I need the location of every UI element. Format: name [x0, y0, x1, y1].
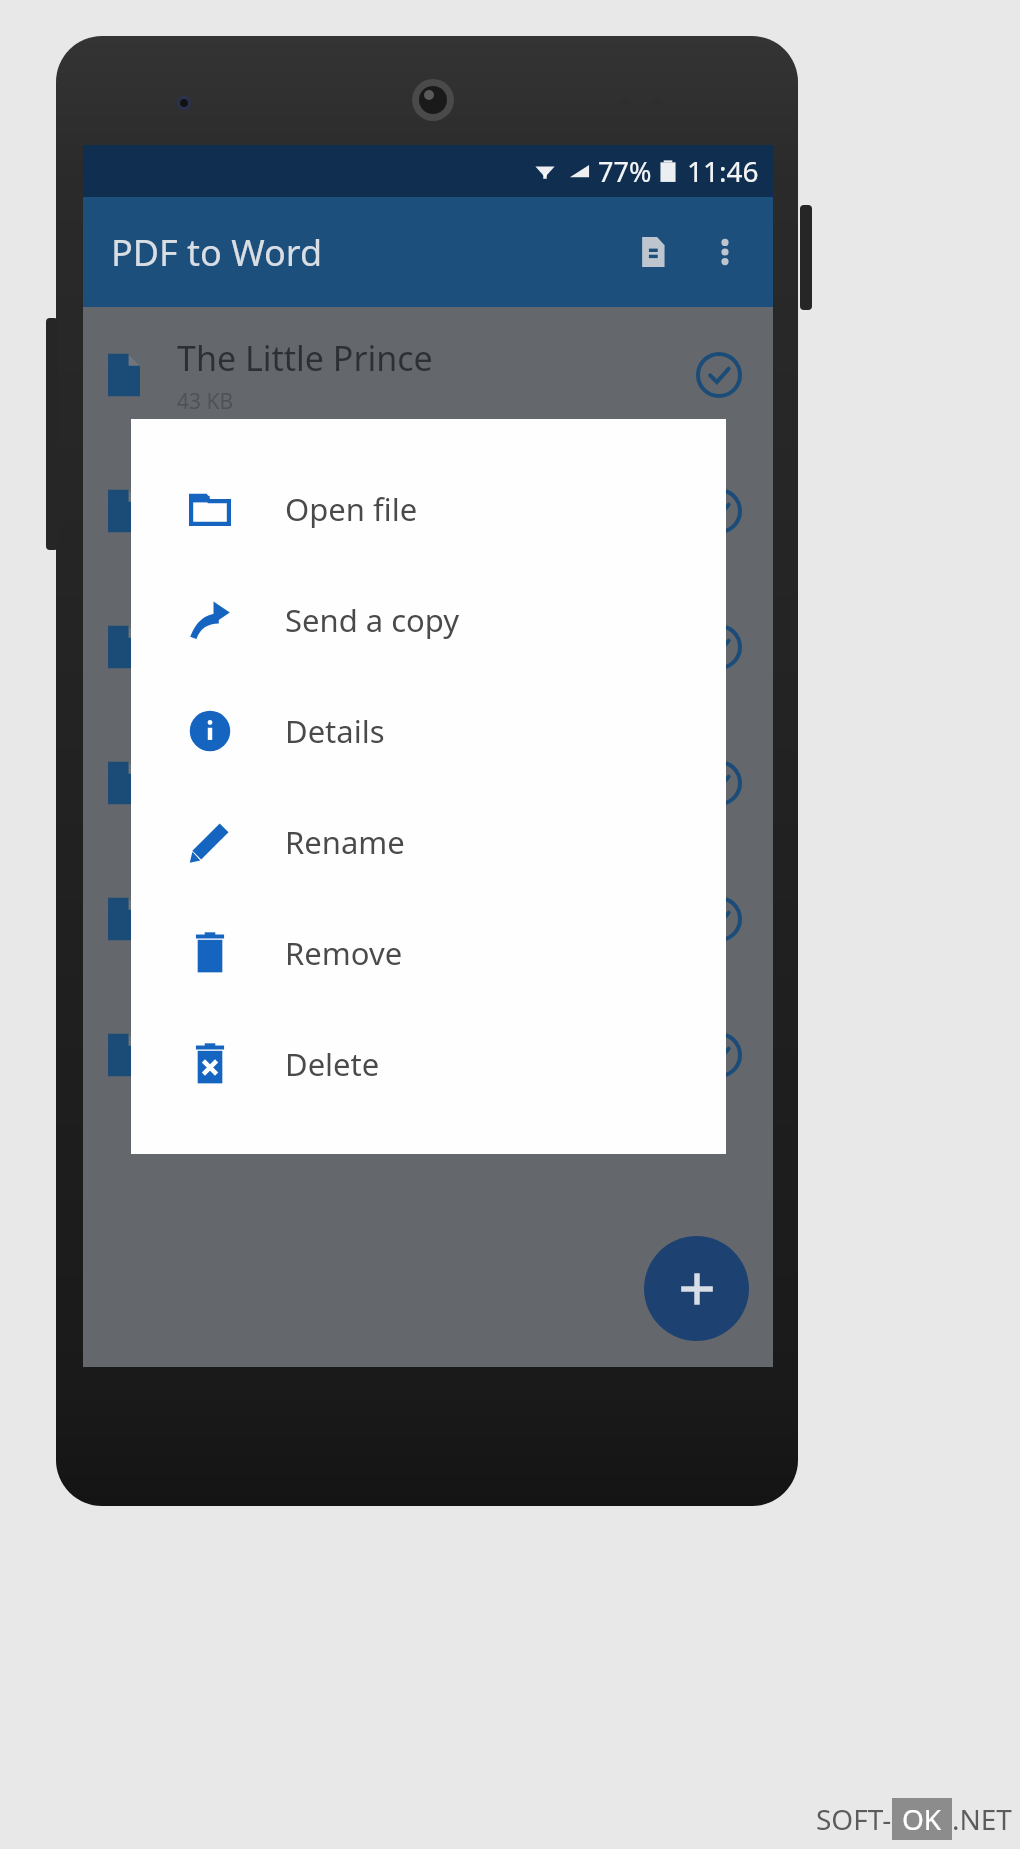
- staticText: 43 KB: [177, 387, 234, 416]
- button[interactable]: Remove: [131, 897, 726, 1008]
- staticText: SOFT-: [816, 1800, 892, 1838]
- button[interactable]: Select file: [83, 715, 773, 851]
- staticText: OK: [902, 1800, 942, 1838]
- staticText: Send a copy: [285, 599, 460, 641]
- staticText: Open file: [285, 488, 418, 530]
- staticText: Details: [285, 710, 385, 752]
- button[interactable]: Select file: [83, 851, 773, 987]
- button[interactable]: Select file: [687, 887, 751, 951]
- button[interactable]: Details: [131, 675, 726, 786]
- staticText: .NET: [952, 1800, 1012, 1838]
- button[interactable]: The Little Prince: [83, 307, 773, 443]
- button[interactable]: Select file: [687, 1023, 751, 1087]
- button[interactable]: Select file: [83, 987, 773, 1123]
- staticText: 11:46: [687, 152, 759, 190]
- staticText: 77%: [598, 153, 652, 190]
- button[interactable]: Add file: [644, 1236, 749, 1341]
- button[interactable]: Select file: [83, 443, 773, 579]
- button[interactable]: Rename: [131, 786, 726, 897]
- button[interactable]: Select file: [687, 615, 751, 679]
- button[interactable]: New document: [617, 216, 689, 288]
- button[interactable]: Select file: [687, 479, 751, 543]
- button[interactable]: Delete: [131, 1008, 726, 1119]
- button[interactable]: Send a copy: [131, 564, 726, 675]
- staticText: Delete: [285, 1043, 380, 1085]
- button[interactable]: Select file: [687, 751, 751, 815]
- staticText: Remove: [285, 932, 403, 974]
- button[interactable]: Select file: [83, 579, 773, 715]
- button[interactable]: Open file: [131, 453, 726, 564]
- button[interactable]: Select file: [687, 343, 751, 407]
- staticText: The Little Prince: [177, 335, 433, 381]
- staticText: Rename: [285, 821, 405, 863]
- button[interactable]: More options: [689, 216, 761, 288]
- staticText: PDF to Word: [111, 228, 323, 277]
